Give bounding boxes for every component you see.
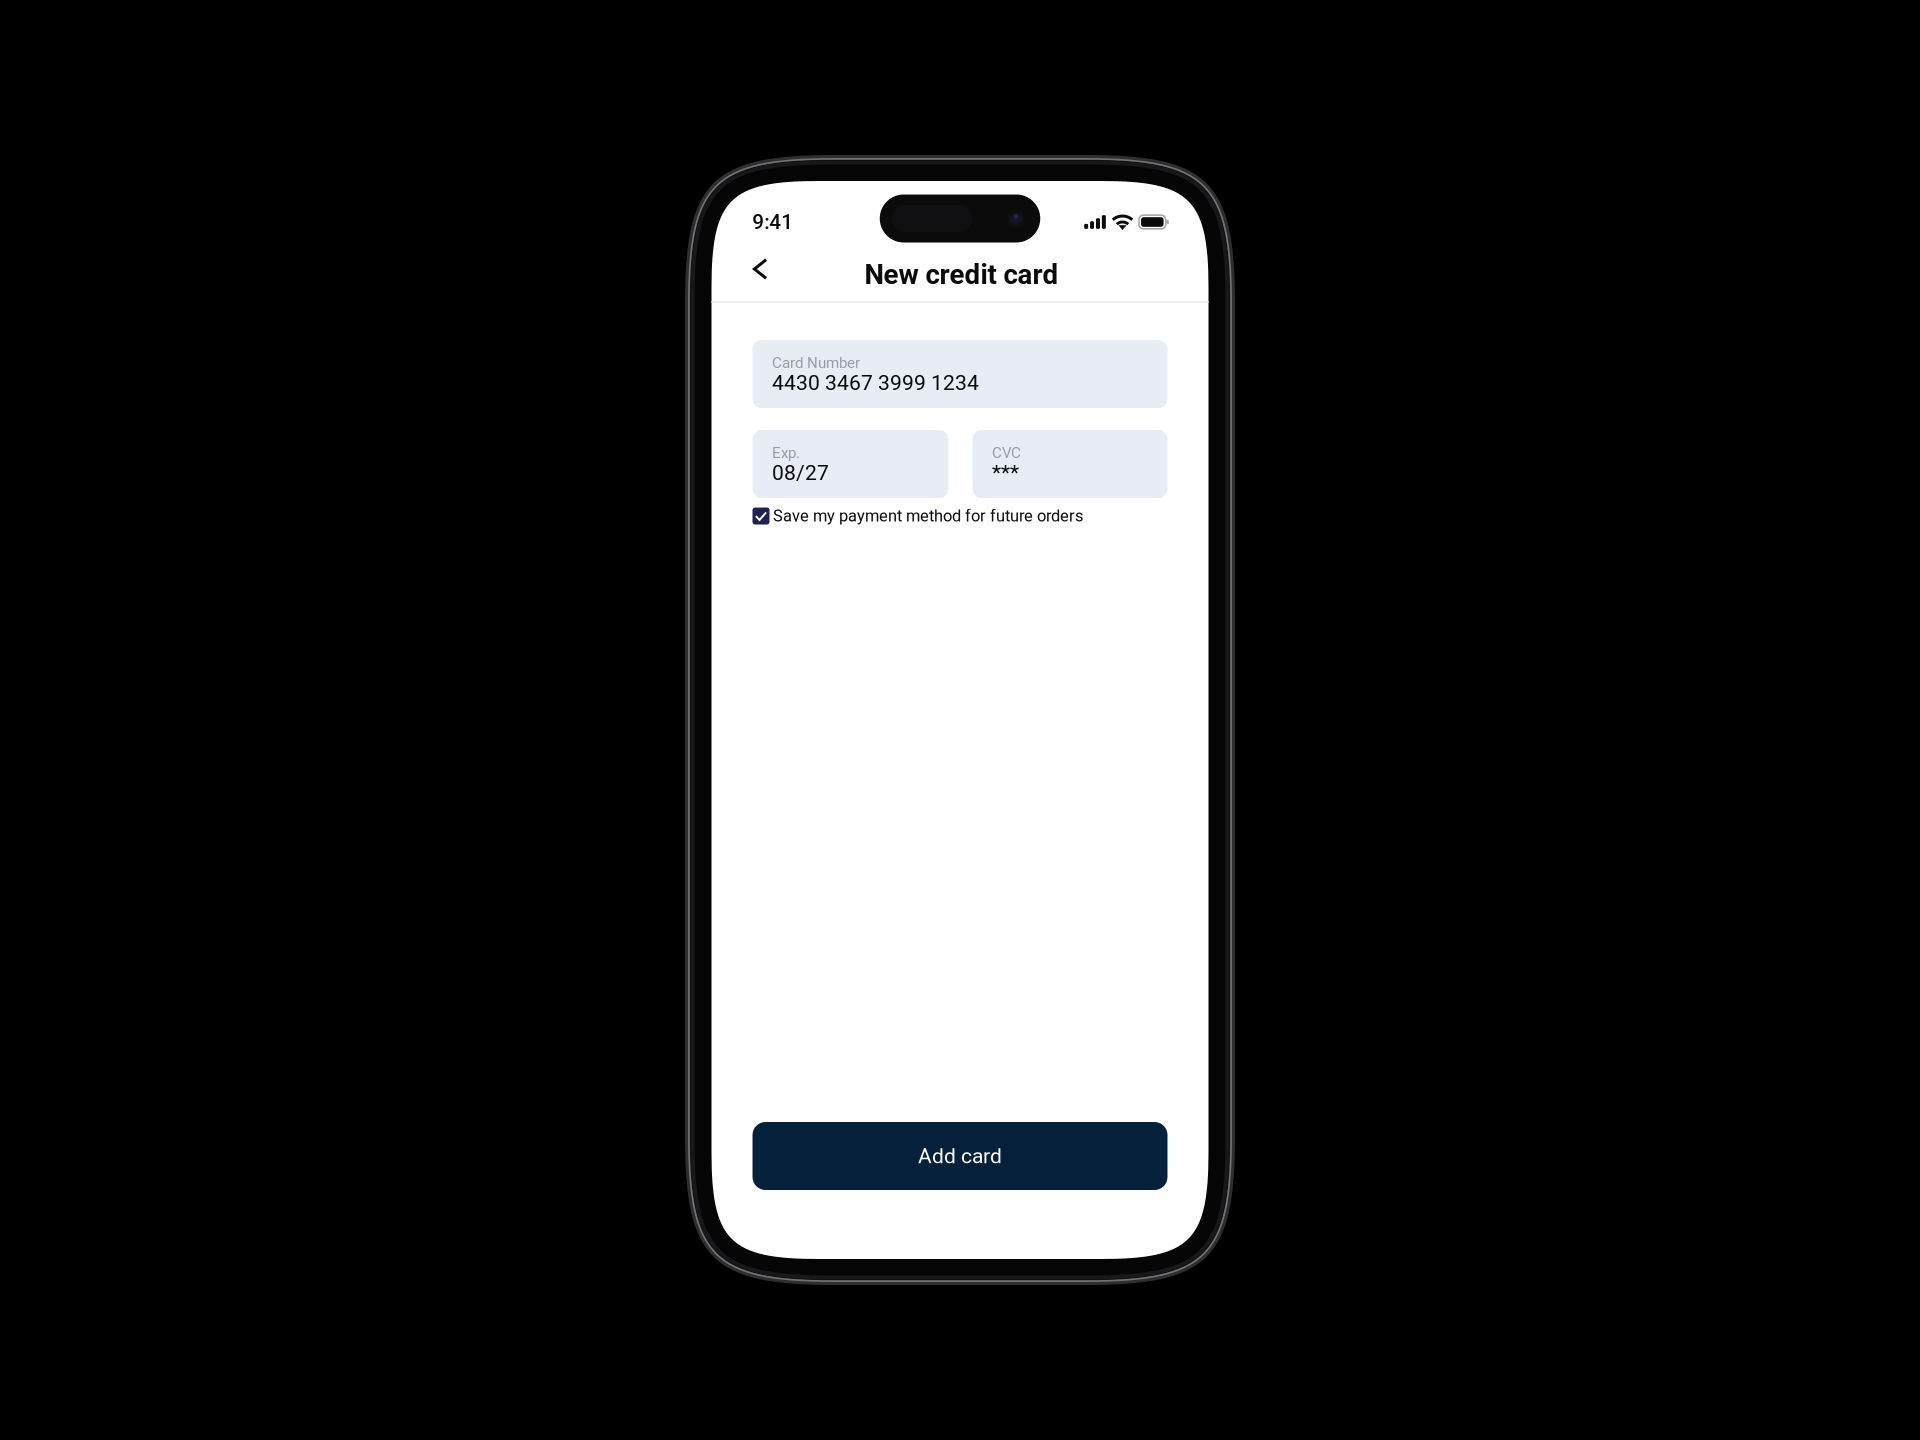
staticText: Save my payment method for future orders: [773, 506, 1083, 526]
button[interactable]: Add card: [752, 1122, 1167, 1190]
staticText: 4430 3467 3999 1234: [772, 370, 979, 395]
staticText: New credit card: [864, 258, 1058, 291]
button[interactable]: CVC: [972, 430, 1167, 498]
staticText: Card Number: [772, 354, 860, 372]
staticText: ***: [992, 460, 1019, 485]
staticText: 08/27: [772, 460, 829, 485]
staticText: CVC: [992, 444, 1021, 462]
button[interactable]: Save my payment method for future orders: [752, 506, 1167, 526]
button[interactable]: Card Number: [752, 340, 1167, 408]
staticText: 9:41: [752, 210, 793, 234]
button[interactable]: Exp.: [752, 430, 948, 498]
staticText: Exp.: [772, 444, 800, 462]
staticText: Add card: [918, 1144, 1002, 1168]
button[interactable]: Back: [752, 253, 796, 299]
